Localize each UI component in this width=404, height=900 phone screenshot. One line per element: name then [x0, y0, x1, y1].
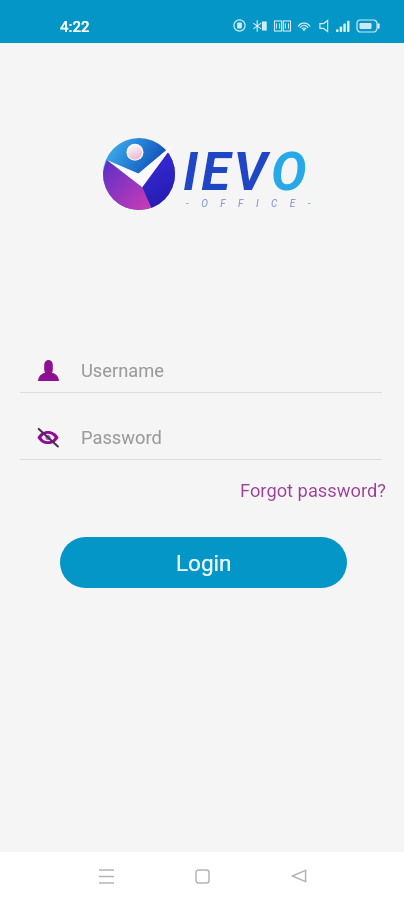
button[interactable]: Recent apps: [82, 852, 130, 900]
staticText: - O F F I C E -: [186, 198, 316, 210]
button[interactable]: Forgot password?: [232, 474, 394, 507]
button[interactable]: Home: [178, 852, 226, 900]
staticText: Login: [176, 550, 232, 576]
button[interactable]: Password: [20, 415, 382, 459]
staticText: O: [271, 141, 307, 203]
staticText: 4:22: [60, 18, 90, 36]
staticText: Password: [81, 427, 162, 448]
button[interactable]: Back: [275, 852, 323, 900]
staticText: Username: [81, 360, 165, 381]
staticText: Forgot password?: [240, 480, 386, 501]
button[interactable]: Username: [20, 348, 382, 392]
staticText: IEV: [183, 141, 271, 203]
button[interactable]: Login: [60, 537, 347, 588]
